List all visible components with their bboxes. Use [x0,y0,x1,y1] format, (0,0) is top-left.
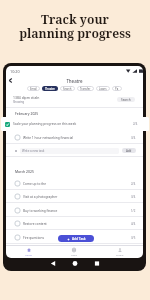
staticText: Add Task [72,237,86,241]
staticText: Fire questions [23,236,45,240]
other: Add task [14,149,18,153]
staticText: Visit at a photographer [23,195,58,199]
staticText: Passbook [115,87,119,91]
button[interactable]: Loans [96,86,110,91]
button[interactable]: Visit at a photographer [6,190,143,203]
staticText: Theatre [6,78,143,84]
staticText: March 2025 [15,169,34,174]
staticText: 1/2 [131,209,136,213]
other: Back [42,261,64,266]
button[interactable]: Search [117,97,135,102]
button[interactable]: Buy to working finance [6,204,143,217]
other: Back [8,78,13,83]
staticText: Scale your planning progress on this wee… [13,122,77,126]
staticText: Showing [13,100,25,104]
button[interactable]: Restore content [6,217,143,230]
button[interactable]: Add [122,148,136,153]
staticText: 3/5 [131,236,136,240]
staticText: Restore content [23,222,47,226]
staticText: 10:20 [10,69,20,74]
button[interactable]: Scale your planning progress on this wee… [1,117,149,131]
button[interactable]: Passbook [112,86,122,91]
staticText: Search [121,98,131,102]
staticText: 2/4 [131,182,136,186]
staticText: 2/4 [133,122,138,126]
staticText: Loans [99,87,107,91]
staticText: Add [126,149,132,153]
staticText: 4/4 [131,222,136,226]
button[interactable]: Theatre [42,86,58,91]
button[interactable]: Email [27,86,40,91]
button[interactable]: Write 1 hour networking financial [6,131,143,144]
staticText: Track your planning progress [0,11,150,41]
staticText: 3/4 [131,136,136,140]
staticText: Write 1 hour networking financial [23,136,74,140]
button[interactable]: Add task [14,144,136,157]
staticText: Theatre [45,87,55,91]
staticText: Transfer [80,87,91,91]
staticText: Come up to the [23,182,47,186]
button[interactable]: Tasks [51,246,97,258]
staticText: February 2025 [15,111,39,116]
staticText: 1384 dipm ctialn [13,95,40,100]
staticText: Tasks [71,253,78,256]
staticText: 3/4 [131,195,136,199]
staticText: Email [30,87,37,91]
button[interactable]: Transfer [77,86,94,91]
staticText: Write a new task [22,149,45,153]
staticText: Profile [116,253,124,256]
button[interactable]: Home [6,246,51,258]
button[interactable]: Search [60,86,75,91]
staticText: Buy to working finance [23,209,58,213]
other: Home [64,261,86,266]
button[interactable]: Add Task [58,235,94,242]
button[interactable]: Fire questions [6,231,143,244]
other: Recents [86,261,108,266]
staticText: Search [63,87,72,91]
staticText: Home [25,253,32,256]
button[interactable]: Profile [97,246,143,258]
button[interactable]: Come up to the [6,177,143,190]
